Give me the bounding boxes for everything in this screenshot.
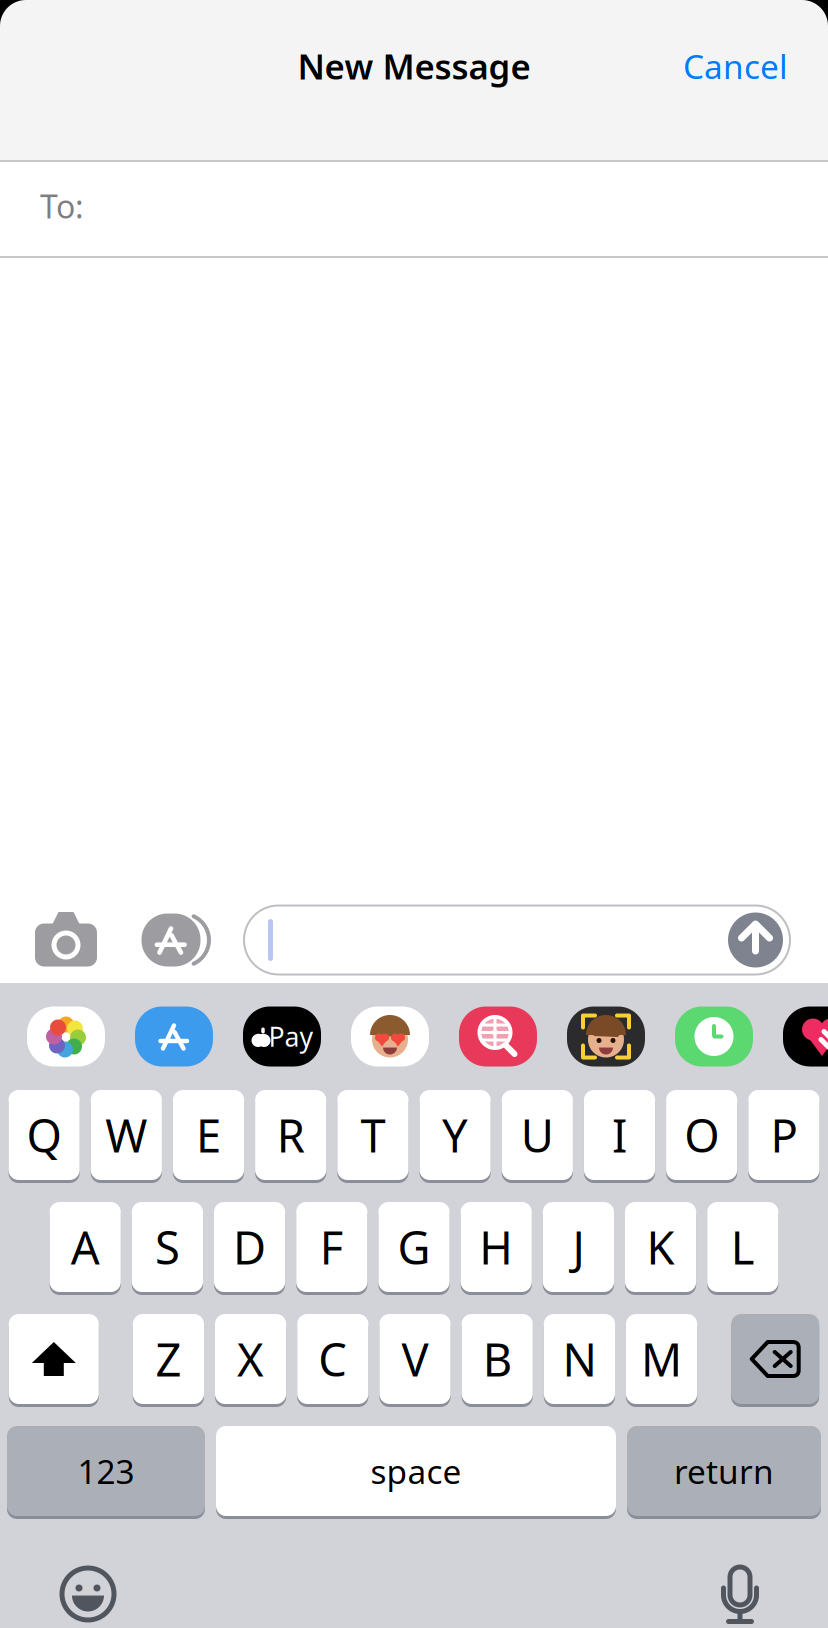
staticText: C — [318, 1329, 347, 1389]
staticText: A — [71, 1217, 100, 1277]
button[interactable]: Emoji — [60, 1566, 116, 1622]
staticText: Q — [27, 1105, 62, 1165]
button[interactable]: U — [502, 1090, 573, 1180]
staticText: Z — [155, 1329, 181, 1389]
staticText: V — [401, 1329, 428, 1389]
button[interactable]: M — [626, 1314, 697, 1404]
staticText: New Message — [297, 43, 530, 89]
button[interactable]: Q — [8, 1090, 80, 1180]
button[interactable]: B — [462, 1314, 533, 1404]
staticText: L — [731, 1217, 755, 1277]
staticText: S — [155, 1217, 180, 1277]
staticText: N — [562, 1329, 596, 1389]
button[interactable]: R — [255, 1090, 326, 1180]
button[interactable]: G — [378, 1202, 450, 1292]
button[interactable]: 123 — [7, 1426, 205, 1516]
button[interactable]: App — [243, 1006, 321, 1066]
button[interactable]: J — [543, 1202, 614, 1292]
staticText: O — [684, 1105, 719, 1165]
staticText: P — [770, 1105, 797, 1165]
staticText: M — [641, 1329, 682, 1389]
staticText: return — [674, 1449, 774, 1493]
button[interactable]: Camera — [35, 909, 97, 971]
staticText: G — [397, 1217, 430, 1277]
staticText: To: — [40, 185, 84, 227]
button[interactable]: space — [216, 1426, 616, 1516]
button[interactable]: K — [625, 1202, 696, 1292]
button[interactable]: T — [337, 1090, 408, 1180]
button[interactable]: W — [91, 1090, 162, 1180]
button[interactable]: Apps — [136, 912, 206, 968]
staticText: J — [572, 1217, 584, 1277]
staticText: U — [521, 1105, 554, 1165]
staticText: E — [196, 1105, 221, 1165]
button[interactable]: C — [297, 1314, 368, 1404]
button[interactable]: App — [675, 1006, 753, 1066]
button[interactable]: Z — [133, 1314, 204, 1404]
button[interactable]: P — [748, 1090, 819, 1180]
button[interactable]: App — [567, 1006, 645, 1066]
button[interactable]: A — [50, 1202, 121, 1292]
staticText: W — [105, 1105, 147, 1165]
button[interactable]: D — [214, 1202, 285, 1292]
button[interactable]: S — [132, 1202, 203, 1292]
button[interactable]: App — [351, 1006, 429, 1066]
button[interactable]: App — [459, 1006, 537, 1066]
button[interactable]: Send — [728, 912, 783, 967]
staticText: 123 — [77, 1449, 134, 1493]
button[interactable]: Delete — [731, 1314, 819, 1404]
staticText: Pay — [268, 1019, 313, 1054]
button[interactable]: App — [135, 1006, 213, 1066]
staticText: K — [647, 1217, 675, 1277]
staticText: Cancel — [683, 44, 788, 88]
button[interactable]: O — [666, 1090, 737, 1180]
staticText: F — [320, 1217, 344, 1277]
staticText: Y — [442, 1105, 468, 1165]
button[interactable]: App — [27, 1006, 105, 1066]
staticText: I — [612, 1105, 627, 1165]
button[interactable]: return — [627, 1426, 821, 1516]
button[interactable]: App — [783, 1006, 828, 1066]
button[interactable]: Cancel — [683, 38, 828, 122]
staticText: R — [277, 1105, 305, 1165]
staticText: H — [479, 1217, 513, 1277]
button[interactable]: X — [215, 1314, 286, 1404]
button[interactable]: Shift — [9, 1314, 99, 1404]
button[interactable]: F — [296, 1202, 367, 1292]
staticText: T — [360, 1105, 385, 1165]
button[interactable]: N — [544, 1314, 615, 1404]
staticText: B — [483, 1329, 512, 1389]
button[interactable]: I — [584, 1090, 655, 1180]
staticText: D — [233, 1217, 266, 1277]
button[interactable]: H — [461, 1202, 532, 1292]
button[interactable]: L — [707, 1202, 778, 1292]
button[interactable]: V — [379, 1314, 451, 1404]
button[interactable]: Y — [419, 1090, 491, 1180]
staticText: space — [370, 1449, 461, 1493]
staticText: X — [237, 1329, 264, 1389]
button[interactable]: E — [173, 1090, 244, 1180]
button[interactable]: Dictation — [718, 1565, 762, 1622]
